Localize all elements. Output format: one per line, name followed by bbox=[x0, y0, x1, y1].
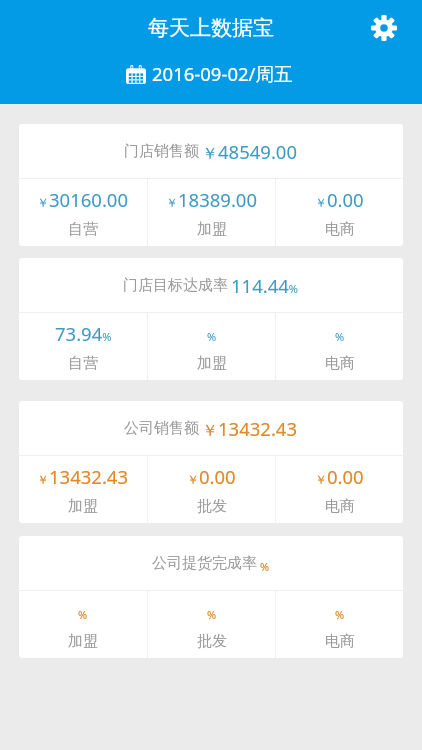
button[interactable]: Settings bbox=[356, 0, 412, 56]
button[interactable]: ​% bbox=[19, 591, 147, 658]
staticText: ​% bbox=[335, 599, 345, 621]
staticText: 批发 bbox=[197, 632, 227, 651]
button[interactable]: ​￥0.00 bbox=[148, 456, 275, 523]
staticText: ​73.94% bbox=[55, 321, 112, 343]
button[interactable]: ​73.94% bbox=[19, 313, 147, 380]
button[interactable]: ​% bbox=[276, 313, 403, 380]
staticText: 加盟 bbox=[68, 497, 98, 516]
button[interactable]: ​￥0.00 bbox=[276, 179, 403, 246]
staticText: ​￥0.00 bbox=[187, 464, 236, 486]
staticText: 批发 bbox=[197, 497, 227, 516]
button[interactable]: 公司提货完成率 bbox=[19, 536, 403, 590]
button[interactable]: 门店销售额 bbox=[19, 124, 403, 178]
staticText: 加盟 bbox=[197, 354, 227, 373]
staticText: ​￥30160.00 bbox=[37, 187, 129, 209]
staticText: 每天上数据宝 bbox=[148, 15, 274, 41]
staticText: 电商 bbox=[325, 220, 355, 239]
staticText: ​￥0.00 bbox=[315, 464, 364, 486]
staticText: 2016-09-02/周五 bbox=[152, 61, 293, 86]
staticText: 加盟 bbox=[68, 632, 98, 651]
button[interactable]: 2016-09-02/周五 bbox=[126, 61, 293, 86]
staticText: ​% bbox=[260, 551, 270, 576]
staticText: ​￥13432.43 bbox=[37, 464, 129, 486]
staticText: 门店目标达成率 bbox=[123, 276, 228, 295]
button[interactable]: ​￥13432.43 bbox=[19, 456, 147, 523]
staticText: 公司提货完成率 bbox=[152, 554, 257, 573]
button[interactable]: 门店目标达成率 bbox=[19, 258, 403, 312]
staticText: 门店销售额 bbox=[124, 142, 199, 161]
button[interactable]: ​￥30160.00 bbox=[19, 179, 147, 246]
button[interactable]: 公司销售额 bbox=[19, 401, 403, 455]
staticText: 电商 bbox=[325, 497, 355, 516]
staticText: 自营 bbox=[68, 354, 98, 373]
staticText: 电商 bbox=[325, 354, 355, 373]
staticText: ​￥13432.43 bbox=[202, 416, 298, 441]
staticText: ​￥18389.00 bbox=[166, 187, 258, 209]
staticText: ​% bbox=[78, 599, 88, 621]
staticText: ​114.44% bbox=[231, 273, 299, 298]
staticText: 公司销售额 bbox=[124, 419, 199, 438]
staticText: 自营 bbox=[68, 220, 98, 239]
button[interactable]: ​% bbox=[148, 591, 275, 658]
button[interactable]: ​￥0.00 bbox=[276, 456, 403, 523]
staticText: 电商 bbox=[325, 632, 355, 651]
staticText: ​￥48549.00 bbox=[202, 139, 298, 164]
staticText: 加盟 bbox=[197, 220, 227, 239]
button[interactable]: ​￥18389.00 bbox=[148, 179, 275, 246]
button[interactable]: ​% bbox=[148, 313, 275, 380]
staticText: ​￥0.00 bbox=[315, 187, 364, 209]
button[interactable]: ​% bbox=[276, 591, 403, 658]
staticText: ​% bbox=[207, 599, 217, 621]
staticText: ​% bbox=[335, 321, 345, 343]
staticText: ​% bbox=[207, 321, 217, 343]
